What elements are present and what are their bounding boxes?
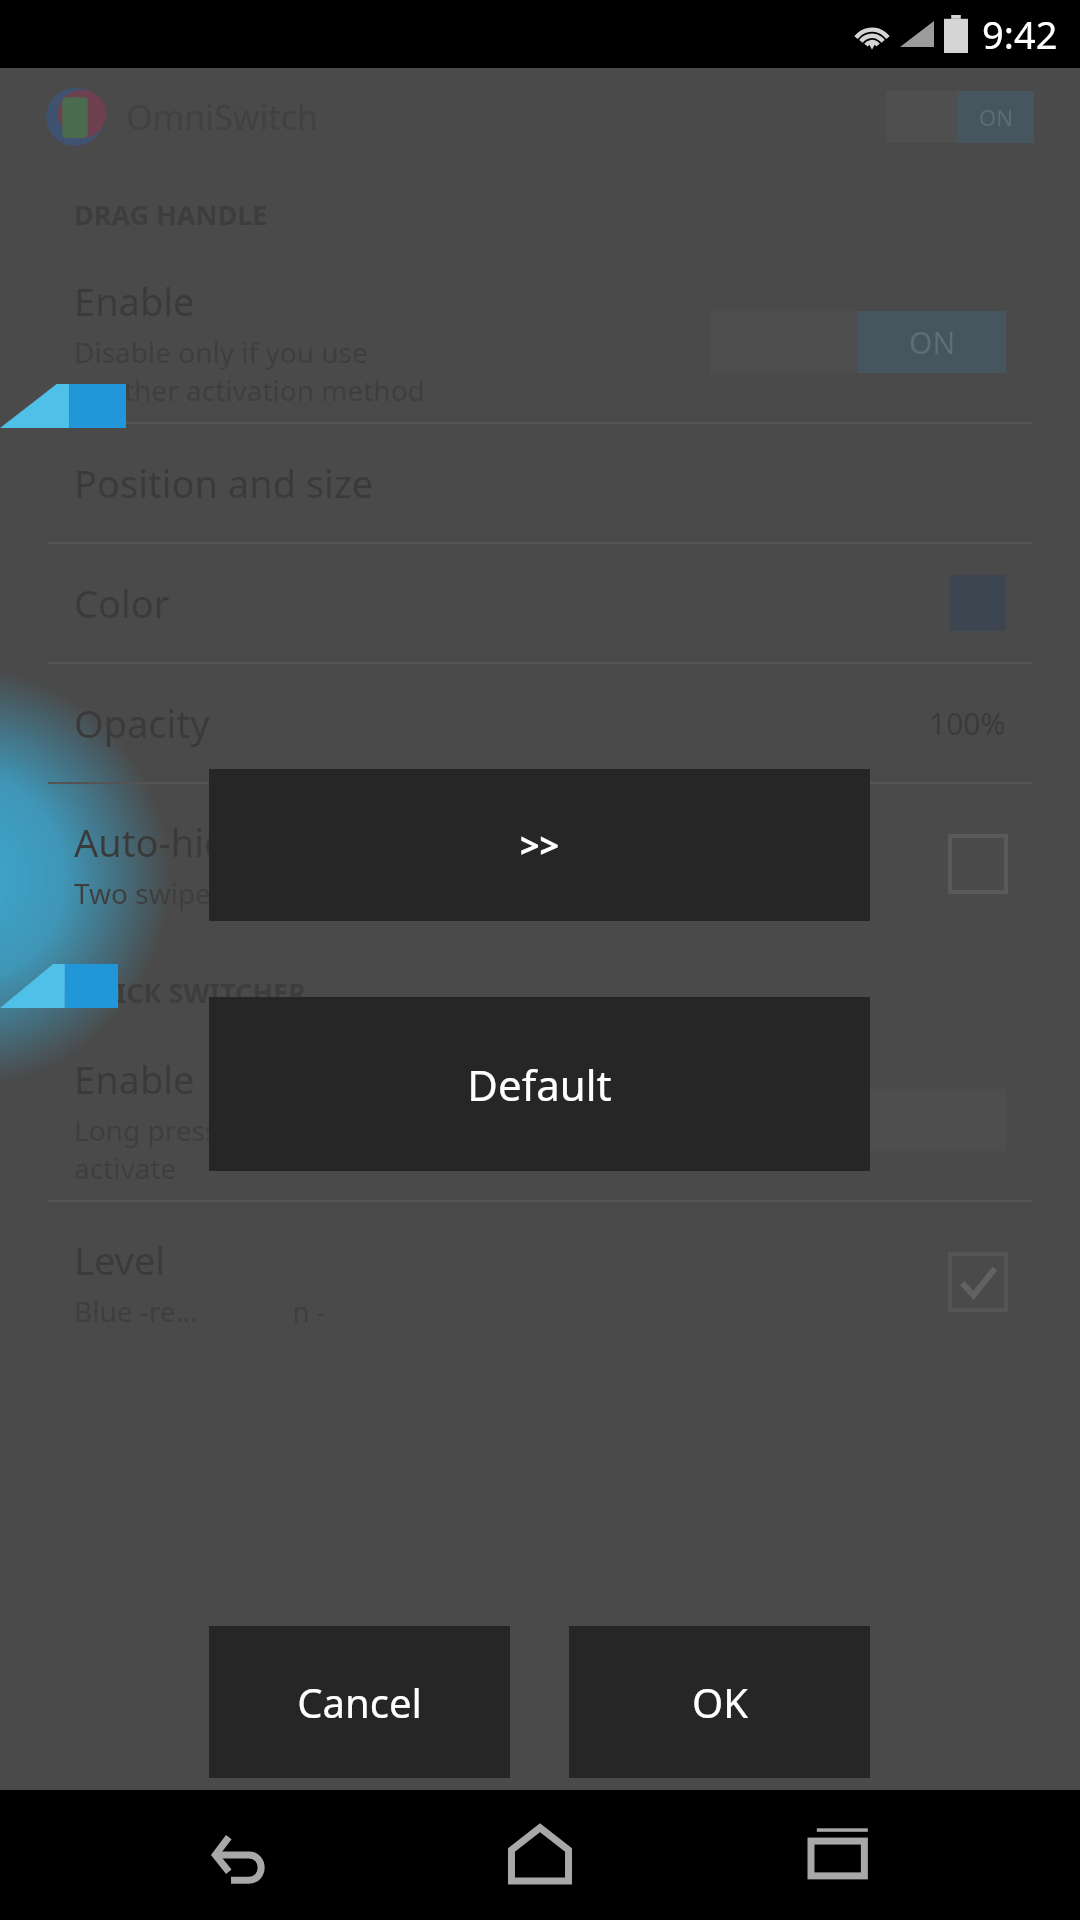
button[interactable]: Back: [180, 1795, 300, 1915]
button[interactable]: ON: [710, 311, 1006, 373]
staticText: >>: [520, 822, 559, 868]
staticText: Opacity: [74, 697, 210, 749]
button[interactable]: >>: [209, 769, 870, 921]
button[interactable]: Recent apps: [780, 1795, 900, 1915]
staticText: OK: [692, 1675, 748, 1729]
button[interactable]: Opacity: [0, 664, 1080, 782]
button[interactable]: Cancel: [209, 1626, 510, 1778]
button[interactable]: Enable: [0, 1040, 1080, 1200]
staticText: Two swipes to show overlay view: [74, 874, 504, 912]
staticText: 9:42: [982, 8, 1058, 60]
button[interactable]: OFF: [710, 1089, 1006, 1151]
staticText: Enable: [74, 275, 195, 327]
staticText: Color: [74, 577, 170, 629]
staticText: Disable only if you use another activati…: [74, 333, 425, 409]
staticText: ON: [909, 322, 956, 363]
staticText: Auto-hide: [74, 816, 249, 868]
button[interactable]: Auto-hide checkbox: [950, 836, 1006, 892]
button[interactable]: OK: [569, 1626, 870, 1778]
button[interactable]: ON: [886, 91, 1034, 143]
staticText: Enable: [74, 1053, 195, 1105]
button[interactable]: Auto-hide: [0, 784, 1080, 944]
button[interactable]: Enable: [0, 262, 1080, 422]
staticText: Default: [467, 1056, 612, 1113]
button[interactable]: Position and size: [0, 424, 1080, 542]
button[interactable]: Home: [480, 1795, 600, 1915]
staticText: DRAG HANDLE: [74, 196, 268, 233]
staticText: Long press drag handle to activate: [74, 1111, 419, 1187]
staticText: QUICK SWITCHER: [74, 974, 306, 1011]
button[interactable]: Default: [209, 997, 870, 1171]
staticText: 100%: [929, 703, 1006, 744]
staticText: ON: [979, 102, 1013, 132]
staticText: Cancel: [297, 1675, 422, 1729]
staticText: Level: [74, 1234, 166, 1286]
button[interactable]: Level checkbox: [950, 1254, 1006, 1310]
staticText: OmniSwitch: [126, 94, 318, 140]
staticText: Position and size: [74, 457, 374, 509]
